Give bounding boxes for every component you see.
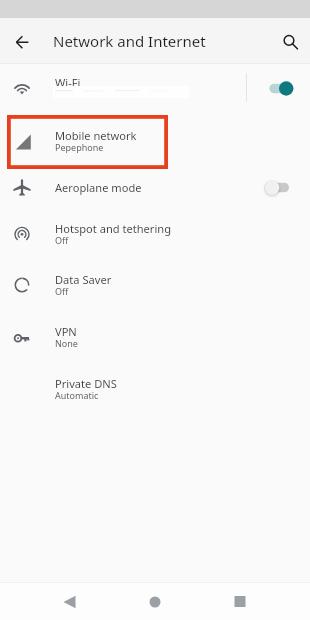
staticText: Hotspot and tethering bbox=[55, 221, 171, 236]
button[interactable]: Search bbox=[275, 28, 301, 54]
button[interactable] bbox=[0, 260, 310, 312]
button[interactable] bbox=[0, 64, 310, 117]
staticText: Mobile network bbox=[55, 128, 137, 143]
button[interactable]: Wi-Fi toggle bbox=[269, 77, 294, 100]
button[interactable] bbox=[0, 117, 310, 168]
staticText: Pepephone bbox=[55, 141, 104, 153]
button[interactable]: Aeroplane mode toggle bbox=[264, 176, 289, 199]
staticText: Private DNS bbox=[55, 376, 117, 391]
staticText: Network and Internet bbox=[53, 31, 206, 51]
staticText: Wi-Fi bbox=[55, 75, 81, 90]
button[interactable] bbox=[0, 168, 310, 208]
button[interactable]: Home bbox=[136, 583, 173, 620]
staticText: None bbox=[55, 337, 78, 349]
staticText: Automatic bbox=[55, 389, 99, 401]
button[interactable]: Back bbox=[51, 583, 88, 620]
button[interactable] bbox=[0, 208, 310, 260]
staticText: Off bbox=[55, 234, 69, 246]
button[interactable]: Back bbox=[9, 28, 35, 54]
staticText: Off bbox=[55, 285, 69, 297]
staticText: Data Saver bbox=[55, 272, 112, 287]
button[interactable]: Recent apps bbox=[221, 583, 258, 620]
button[interactable] bbox=[0, 364, 310, 416]
button[interactable] bbox=[0, 312, 310, 364]
staticText: Aeroplane mode bbox=[55, 180, 142, 195]
staticText: VPN bbox=[55, 324, 77, 339]
